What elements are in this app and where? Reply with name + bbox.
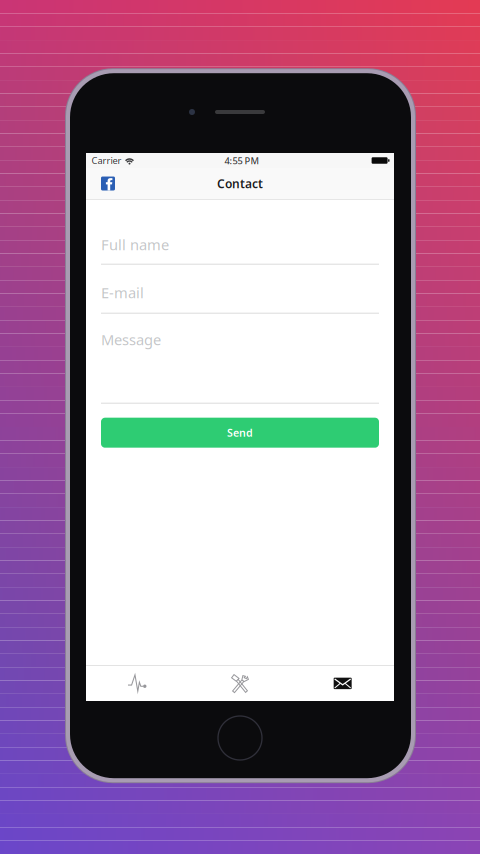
button[interactable]: Contact (291, 666, 394, 701)
button[interactable]: Send (101, 418, 379, 448)
staticText: 4:55 PM (224, 154, 259, 167)
staticText: Carrier (91, 154, 121, 167)
button[interactable]: Facebook (86, 170, 115, 196)
staticText: Contact (217, 175, 263, 191)
button[interactable]: Tools (189, 666, 291, 701)
staticText: Send (227, 426, 253, 440)
staticText: Full name (101, 235, 169, 254)
button[interactable]: Activity (86, 666, 189, 701)
staticText: E-mail (101, 283, 144, 302)
staticText: Message (101, 330, 161, 349)
